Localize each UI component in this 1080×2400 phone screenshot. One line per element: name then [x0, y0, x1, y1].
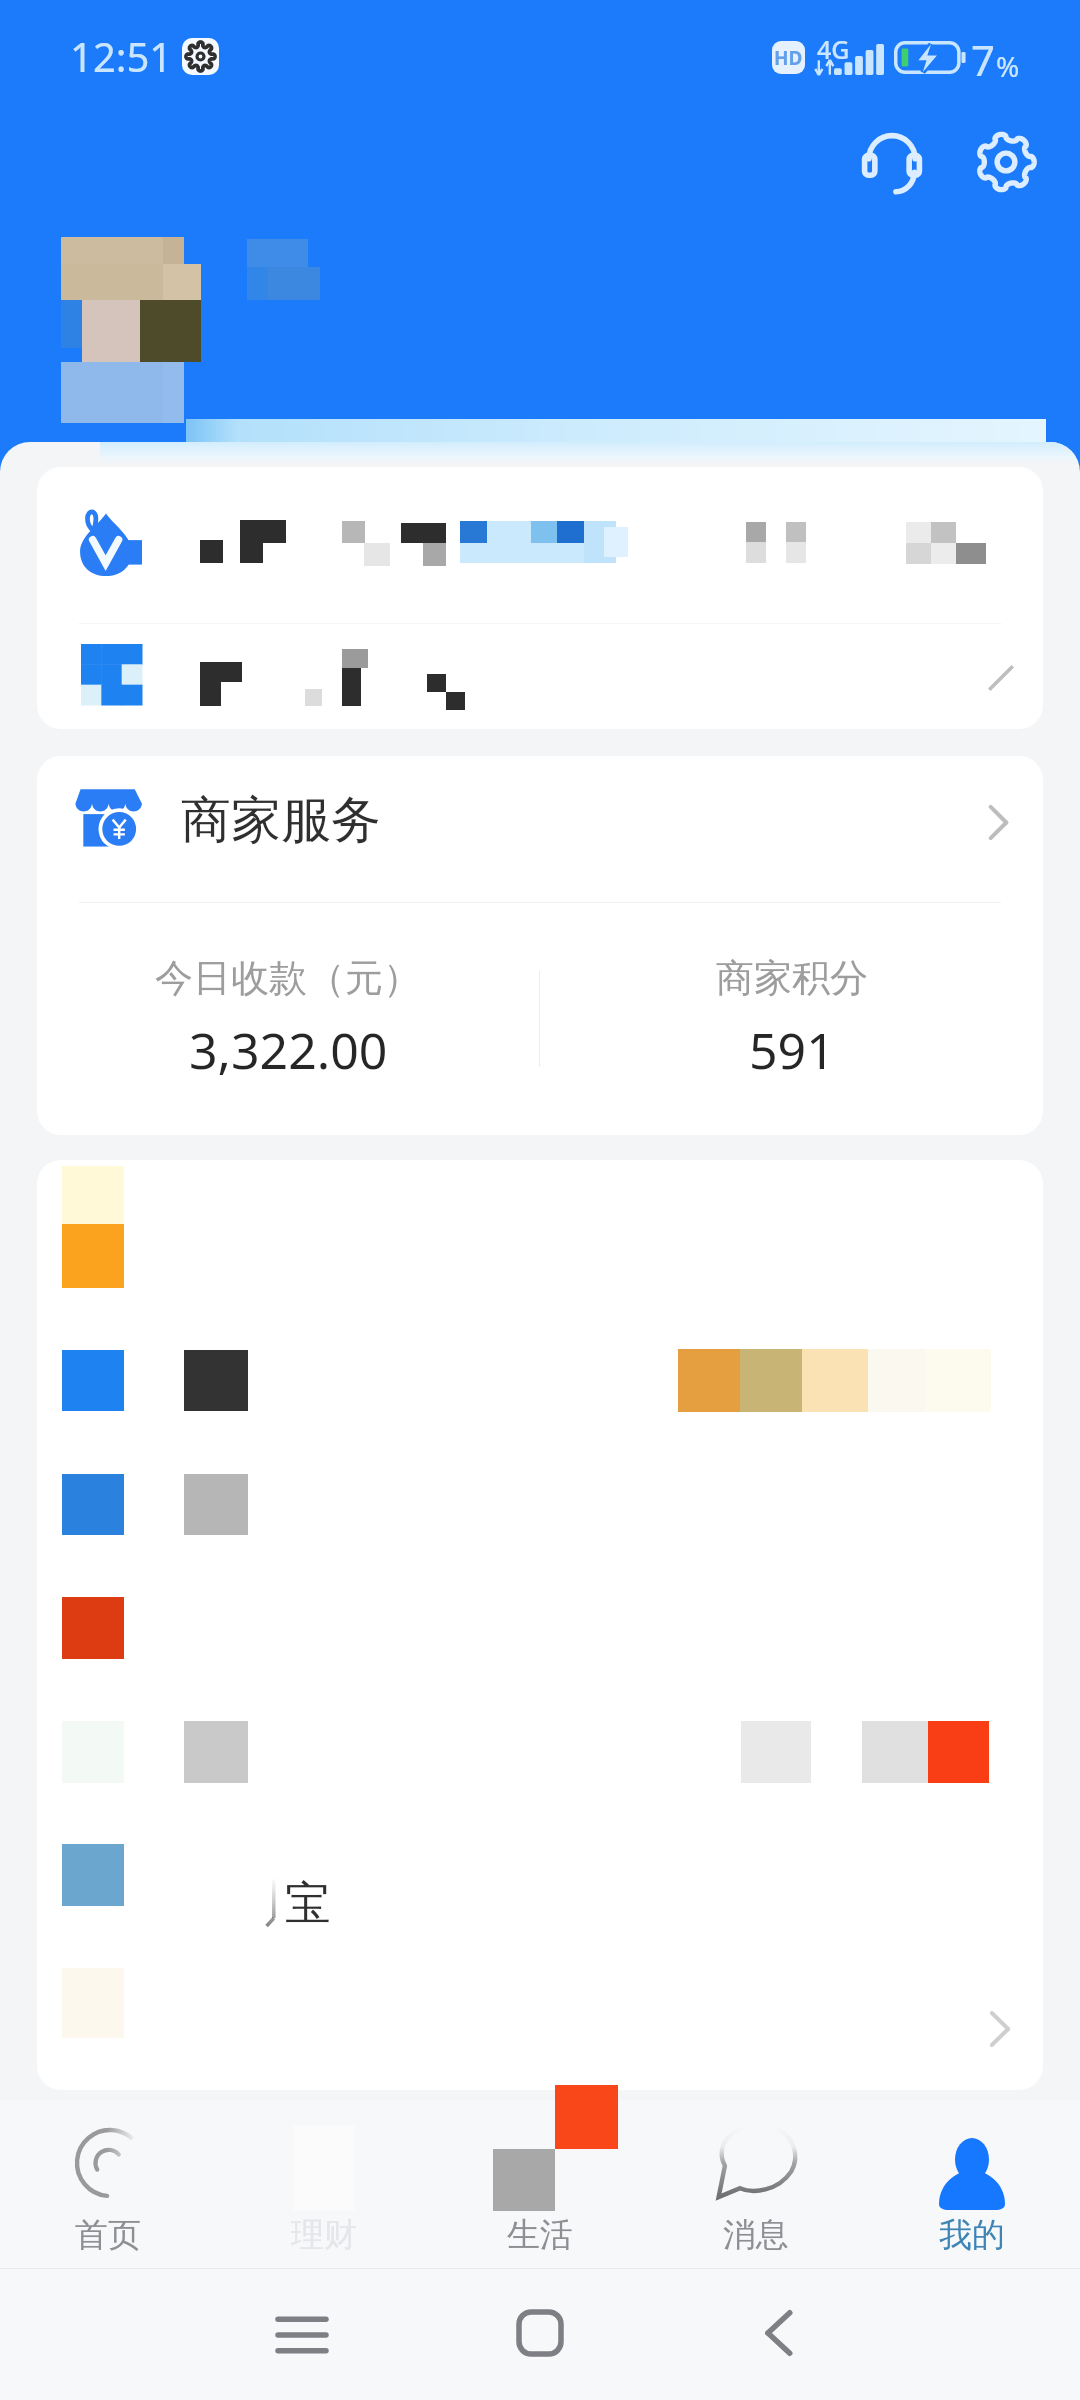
button[interactable]: 生活	[432, 2100, 648, 2268]
staticText: 3,322.00	[189, 1016, 388, 1084]
button[interactable]: Customer service	[842, 112, 942, 212]
staticText: 宝	[285, 1875, 331, 1933]
button[interactable]: 首页	[0, 2100, 216, 2268]
staticText: 生活	[507, 2214, 573, 2256]
button[interactable]	[37, 467, 1043, 623]
button[interactable]: Back	[718, 2273, 838, 2393]
button[interactable]: Home	[480, 2273, 600, 2393]
staticText: 4G	[817, 32, 850, 66]
button[interactable]: Settings	[956, 112, 1056, 212]
staticText: 商家积分	[716, 954, 868, 1002]
staticText: 12:51	[70, 29, 173, 83]
button[interactable]: 今日收款（元）	[37, 903, 539, 1135]
staticText: 今日收款（元）	[155, 954, 421, 1002]
staticText: 7	[971, 31, 996, 88]
button[interactable]: 商家积分	[540, 903, 1043, 1135]
staticText: 我的	[939, 2214, 1005, 2256]
staticText: 首页	[75, 2214, 141, 2256]
button[interactable]: 消息	[648, 2100, 864, 2268]
button[interactable]: Recents	[242, 2275, 362, 2395]
button[interactable]: 商家服务	[37, 756, 1043, 902]
staticText: HD	[774, 45, 803, 71]
button[interactable]: 我的	[864, 2100, 1080, 2268]
staticText: 591	[749, 1016, 835, 1084]
staticText: %	[996, 47, 1020, 85]
staticText: 商家服务	[181, 789, 381, 852]
button[interactable]	[37, 624, 1043, 729]
staticText: 消息	[723, 2214, 789, 2256]
staticText: 理财	[291, 2214, 357, 2256]
